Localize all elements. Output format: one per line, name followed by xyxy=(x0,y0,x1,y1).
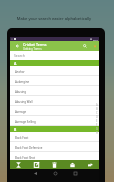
staticText: Abusing xyxy=(15,90,27,94)
button[interactable]: Back Foot xyxy=(10,132,99,142)
staticText: Back Lift xyxy=(15,166,27,170)
staticText: Cricket Terms xyxy=(23,42,47,47)
button[interactable]: Store xyxy=(63,160,81,169)
button[interactable]: Abusing Wall xyxy=(10,96,99,106)
button[interactable]: Back Foot Defensive xyxy=(10,142,99,152)
button[interactable]: Recents xyxy=(65,169,85,182)
staticText: Average Selling xyxy=(15,120,36,124)
staticText: Back Foot Defensive xyxy=(15,146,43,150)
button[interactable]: B xyxy=(14,126,99,132)
button[interactable]: Back xyxy=(10,41,99,51)
staticText: B xyxy=(96,107,98,111)
staticText: Make your search easier alphabetically xyxy=(0,16,111,22)
staticText: Anchor xyxy=(15,70,25,74)
button[interactable]: Search xyxy=(14,53,99,60)
button[interactable]: Back Foot Shot xyxy=(10,152,99,162)
button[interactable]: Aubergine xyxy=(10,76,99,86)
button[interactable]: Average Selling xyxy=(10,116,99,126)
button[interactable]: Filter xyxy=(10,160,27,169)
button[interactable]: Home xyxy=(45,169,65,182)
staticText: Abusing Wall xyxy=(15,100,33,104)
button[interactable]: A xyxy=(14,60,99,66)
staticText: Average xyxy=(15,110,27,114)
staticText: Back Foot xyxy=(15,136,29,140)
button[interactable]: Share xyxy=(81,160,99,169)
button[interactable]: Abusing xyxy=(10,86,99,96)
staticText: B xyxy=(14,127,17,132)
button[interactable]: Edit xyxy=(27,160,45,169)
staticText: Back Foot Shot xyxy=(15,156,36,160)
staticText: Search xyxy=(14,53,25,58)
button[interactable]: Back xyxy=(25,169,45,182)
staticText: C xyxy=(96,111,98,115)
other: Favorite xyxy=(90,41,99,51)
staticText: 9:41 xyxy=(93,38,98,41)
staticText: D xyxy=(96,115,98,119)
other: Search xyxy=(80,41,90,51)
staticText: Aubergine xyxy=(15,80,30,84)
staticText: A xyxy=(14,61,17,66)
button[interactable]: Anchor xyxy=(10,66,99,76)
staticText: E xyxy=(96,119,98,123)
button[interactable]: Back Lift xyxy=(10,162,99,172)
staticText: A xyxy=(96,103,98,107)
staticText: F xyxy=(96,123,98,127)
staticText: G xyxy=(96,127,98,131)
staticText: Getting Terms xyxy=(23,47,42,51)
button[interactable]: Delete xyxy=(45,160,63,169)
button[interactable]: Average xyxy=(10,106,99,116)
staticText: H xyxy=(96,131,98,135)
other: Back xyxy=(10,41,23,51)
